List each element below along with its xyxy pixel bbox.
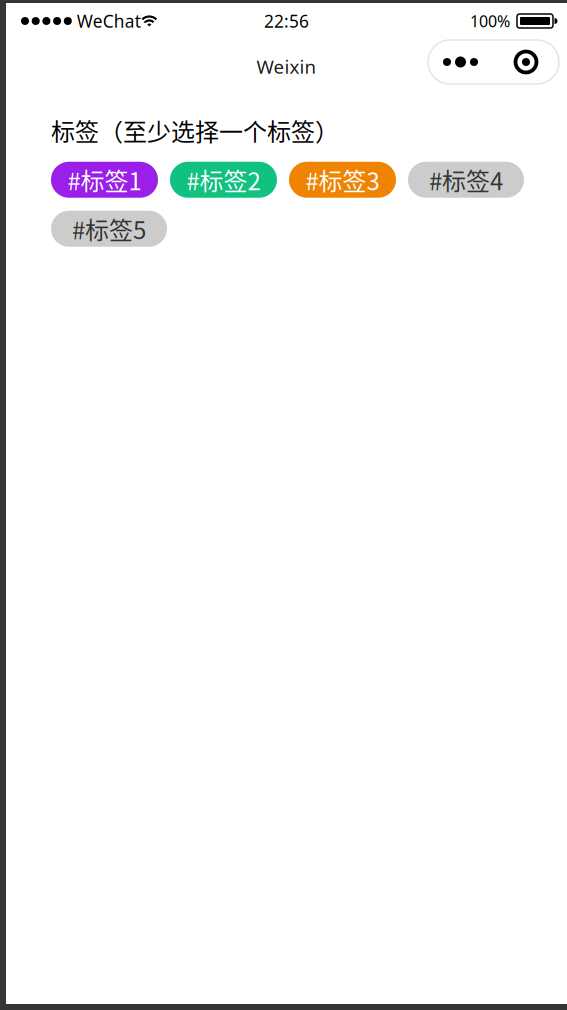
staticText: #标签5 (72, 211, 146, 246)
staticText: Weixin (256, 54, 316, 79)
button[interactable]: #标签4 (408, 162, 524, 198)
button[interactable]: Close mini program (493, 40, 559, 84)
staticText: WeChat (77, 9, 141, 32)
staticText: #标签3 (305, 162, 379, 197)
button[interactable]: #标签2 (170, 162, 277, 198)
staticText: 100% (470, 10, 510, 32)
staticText: #标签2 (186, 162, 260, 197)
button[interactable]: More (428, 40, 493, 84)
button[interactable]: #标签5 (51, 211, 167, 247)
staticText: #标签1 (67, 162, 141, 197)
staticText: #标签4 (429, 162, 503, 197)
staticText: 22:56 (264, 9, 309, 32)
button[interactable]: #标签1 (51, 162, 158, 198)
button[interactable]: #标签3 (289, 162, 396, 198)
staticText: 标签（至少选择一个标签） (51, 113, 339, 148)
